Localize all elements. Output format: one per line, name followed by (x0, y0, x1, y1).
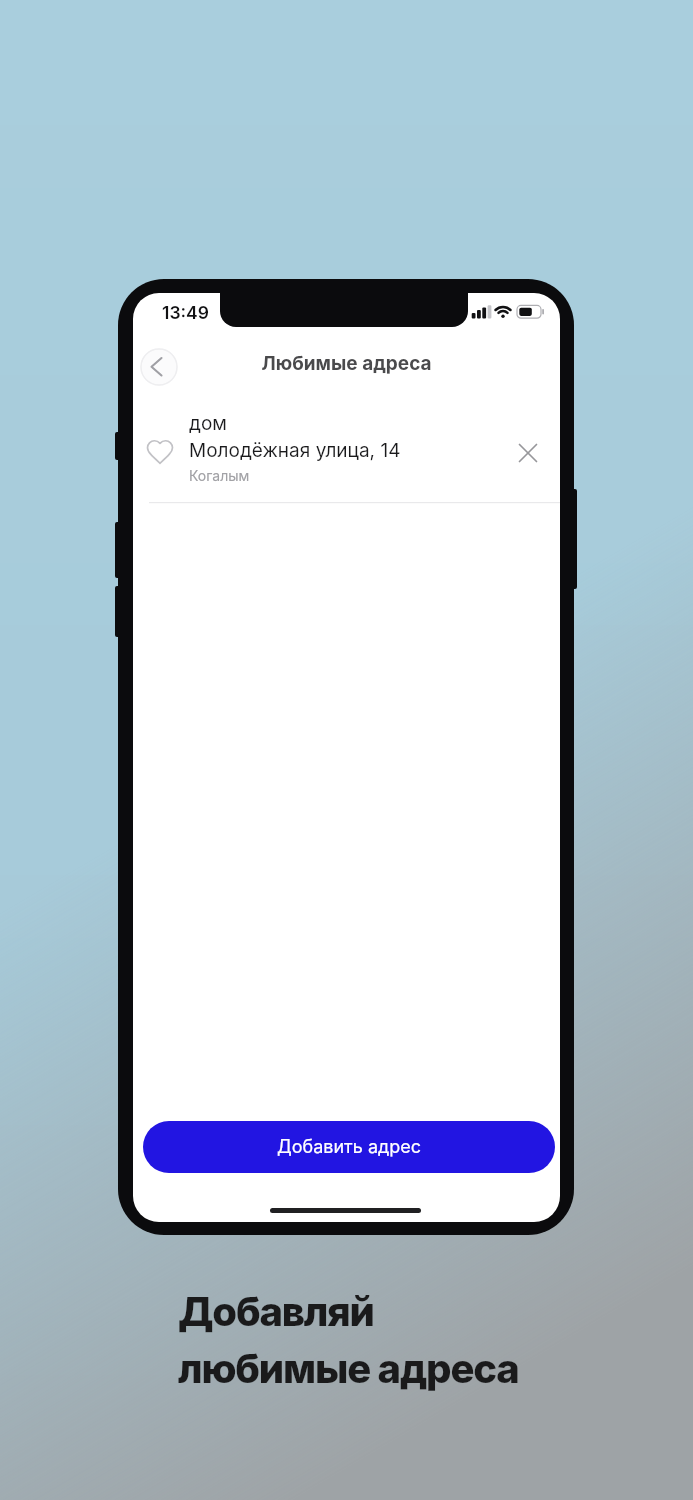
staticText: Добавить адрес (277, 1136, 422, 1158)
staticText: Когалым (189, 467, 250, 484)
button[interactable] (141, 349, 177, 385)
staticText: дом (189, 412, 227, 435)
button[interactable]: дом (133, 403, 560, 503)
staticText: любимые адреса (178, 1344, 519, 1392)
staticText: Добавляй (178, 1287, 374, 1335)
staticText: Молодёжная улица, 14 (189, 439, 401, 462)
staticText: 13:49 (162, 302, 209, 323)
staticText: Любимые адреса (133, 352, 560, 375)
button[interactable]: Добавить адрес (143, 1121, 555, 1173)
